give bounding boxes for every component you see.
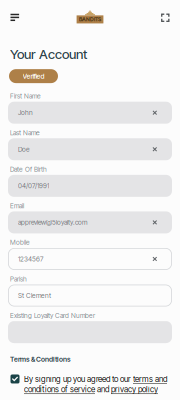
button[interactable]: Menu: [0, 0, 27, 28]
staticText: Existing Loyalty Card Number: [10, 311, 95, 320]
staticText: Last Name: [10, 129, 40, 137]
button[interactable]: Scan: [153, 0, 180, 28]
staticText: By signing up you agreed to our terms an…: [24, 374, 167, 394]
staticText: Doe: [18, 145, 30, 153]
button[interactable]: Verified: [9, 69, 58, 83]
staticText: First Name: [10, 92, 41, 100]
staticText: Your Account: [10, 46, 87, 62]
staticText: Parish: [10, 275, 27, 283]
staticText: Terms & Conditions: [10, 355, 71, 363]
staticText: 1234567: [18, 255, 43, 263]
staticText: St Clement: [18, 291, 51, 300]
staticText: Email: [10, 202, 24, 210]
staticText: Date Of Birth: [10, 165, 47, 173]
button[interactable]: Accept terms and conditions: [10, 374, 19, 383]
staticText: appreview@5loyalty.com: [18, 218, 87, 226]
staticText: John: [18, 109, 33, 117]
staticText: Verified: [22, 72, 44, 80]
staticText: Mobile: [10, 238, 30, 246]
staticText: BANDITS: [79, 16, 101, 23]
staticText: 04/07/1991: [18, 182, 49, 190]
